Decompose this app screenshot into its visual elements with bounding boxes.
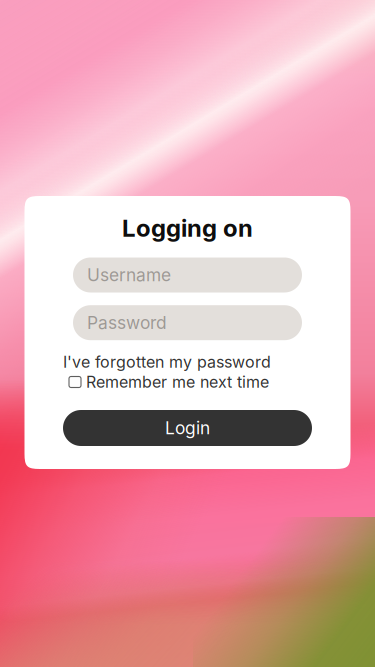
staticText: Login — [165, 417, 210, 438]
staticText: Logging on — [122, 213, 253, 242]
button[interactable]: I've forgotten my password — [63, 354, 312, 370]
staticText: Remember me next time — [86, 372, 269, 392]
button[interactable]: Password — [73, 305, 302, 340]
button[interactable]: Login — [63, 410, 312, 446]
staticText: Password — [87, 312, 167, 333]
staticText: I've forgotten my password — [63, 352, 271, 372]
button[interactable]: Remember me next time — [69, 374, 306, 390]
staticText: Username — [87, 264, 171, 285]
button[interactable]: Username — [73, 257, 302, 292]
